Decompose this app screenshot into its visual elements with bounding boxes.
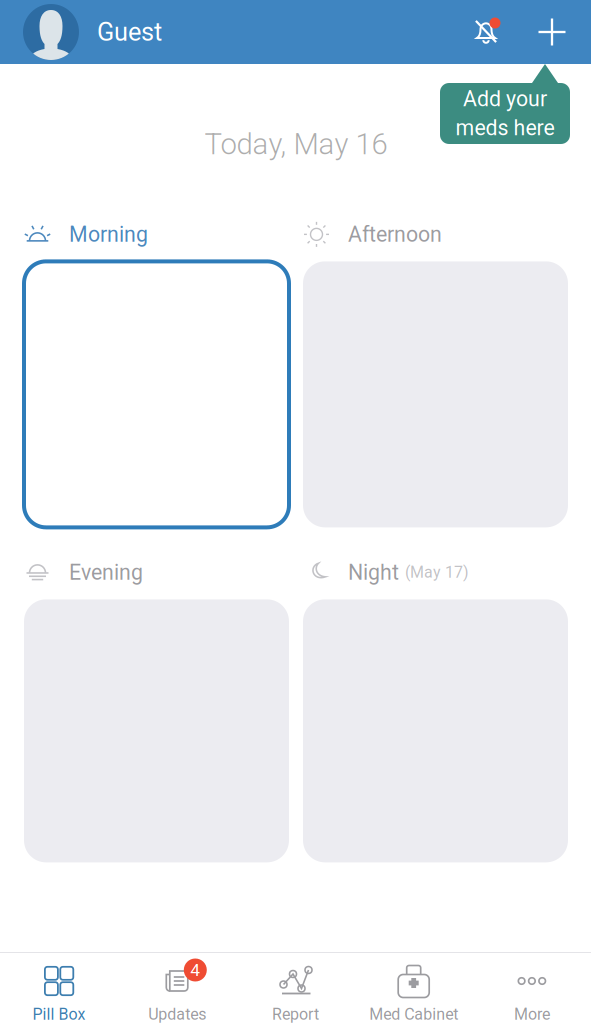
- button[interactable]: Add medication: [535, 15, 569, 49]
- button[interactable]: Pill Box: [0, 953, 118, 1024]
- staticText: Evening: [69, 560, 143, 585]
- staticText: Today, May 16: [204, 127, 387, 161]
- staticText: Afternoon: [348, 222, 442, 247]
- staticText: Night: [348, 560, 399, 585]
- staticText: meds here: [455, 115, 554, 140]
- button[interactable]: Notifications: [469, 15, 503, 49]
- button[interactable]: More: [473, 953, 591, 1024]
- button[interactable]: 4: [118, 953, 236, 1024]
- staticText: (May 17): [405, 563, 469, 582]
- staticText: More: [514, 1005, 550, 1024]
- button[interactable]: Profile: [23, 4, 79, 60]
- staticText: Morning: [69, 222, 148, 247]
- staticText: Add your: [463, 86, 547, 111]
- button[interactable]: Med Cabinet: [355, 953, 473, 1024]
- staticText: Pill Box: [33, 1005, 86, 1024]
- staticText: Guest: [97, 17, 162, 47]
- button[interactable]: [24, 261, 289, 527]
- staticText: Med Cabinet: [369, 1005, 458, 1024]
- button[interactable]: Report: [236, 953, 355, 1024]
- staticText: Report: [272, 1005, 319, 1024]
- staticText: 4: [190, 960, 200, 980]
- staticText: Updates: [148, 1005, 206, 1024]
